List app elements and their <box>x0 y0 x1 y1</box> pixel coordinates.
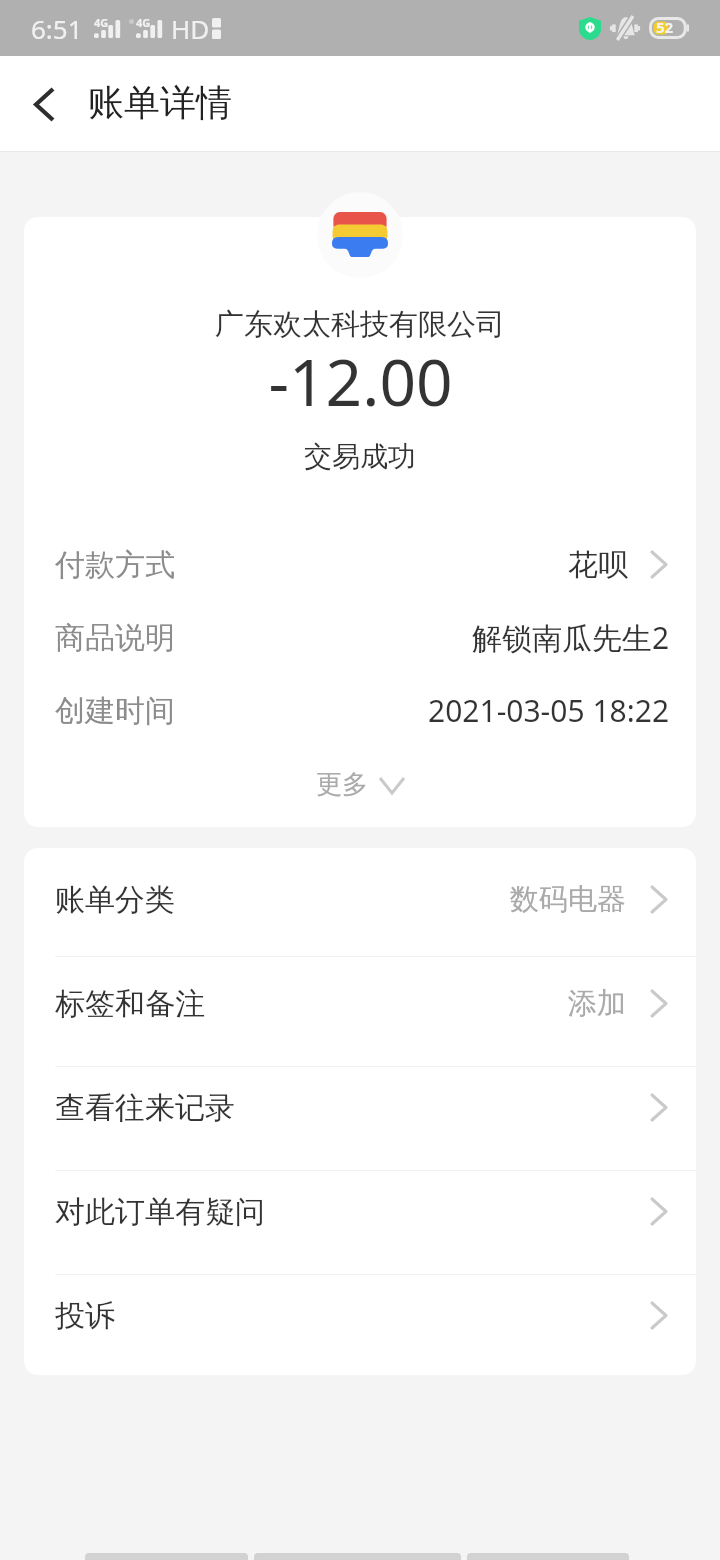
staticText: 创建时间 <box>55 692 175 730</box>
staticText: 添加 <box>568 985 626 1022</box>
staticText: 付款方式 <box>55 546 175 584</box>
staticText: 52 <box>656 17 674 37</box>
staticText: 解锁南瓜先生2 <box>472 617 670 658</box>
button[interactable]: 查看往来记录 <box>24 1056 696 1159</box>
staticText: -12.00 <box>268 338 453 412</box>
button[interactable]: Back <box>0 56 88 152</box>
staticText: 花呗 <box>568 546 628 584</box>
other: Merchant logo <box>317 192 403 278</box>
button[interactable]: 标签和备注 <box>24 952 696 1055</box>
staticText: 4G <box>136 15 151 30</box>
button[interactable]: 账单分类 <box>24 848 696 951</box>
staticText: 账单详情 <box>88 80 232 125</box>
staticText: 商品说明 <box>55 619 175 657</box>
button[interactable]: 更多 <box>24 751 696 815</box>
staticText: 4G <box>94 15 109 30</box>
staticText: 6:51 <box>31 11 83 46</box>
staticText: 对此订单有疑问 <box>55 1193 265 1231</box>
button[interactable]: 付款方式 <box>24 528 696 601</box>
staticText: 投诉 <box>55 1297 115 1335</box>
staticText: 广东欢太科技有限公司 <box>215 306 505 343</box>
staticText: 账单分类 <box>55 881 175 919</box>
button[interactable]: 对此订单有疑问 <box>24 1160 696 1263</box>
staticText: 数码电器 <box>510 881 626 918</box>
staticText: 标签和备注 <box>55 985 205 1023</box>
staticText: HD <box>171 11 210 46</box>
staticText: 更多 <box>316 768 368 801</box>
staticText: 查看往来记录 <box>55 1089 235 1127</box>
button[interactable]: 投诉 <box>24 1264 696 1367</box>
staticText: 交易成功 <box>304 439 416 474</box>
staticText: 2021-03-05 18:22 <box>428 690 670 731</box>
